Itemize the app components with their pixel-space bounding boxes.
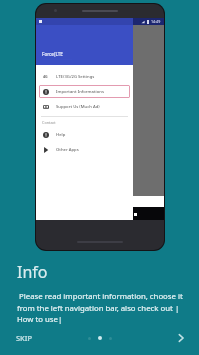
staticText: Help xyxy=(56,132,66,138)
staticText: Force(LTE xyxy=(42,51,63,57)
button[interactable]: Important Informations xyxy=(39,85,130,98)
button[interactable]: SKIP xyxy=(8,327,41,349)
button[interactable] xyxy=(88,337,91,340)
staticText: SKIP xyxy=(16,333,33,343)
staticText: 14:49 xyxy=(151,19,161,24)
button[interactable]: Next xyxy=(169,326,193,350)
staticText: 4G xyxy=(43,74,48,79)
button[interactable]: Help xyxy=(39,128,130,141)
button[interactable]: Support Us (Much Ad) xyxy=(39,100,130,113)
staticText: Important Informations xyxy=(56,89,104,95)
staticText: Please read important information, choos… xyxy=(17,291,187,324)
button[interactable]: Recents xyxy=(129,208,141,220)
button[interactable]: Other Apps xyxy=(39,143,130,156)
button[interactable]: 4G xyxy=(39,70,130,83)
button[interactable] xyxy=(98,336,102,340)
staticText: Support Us (Much Ad) xyxy=(56,104,100,110)
staticText: Info xyxy=(17,261,48,283)
button[interactable] xyxy=(109,337,112,340)
staticText: Other Apps xyxy=(56,147,79,153)
staticText: LTE/3G/2G Settings xyxy=(56,74,95,80)
staticText: Contact xyxy=(42,120,56,125)
